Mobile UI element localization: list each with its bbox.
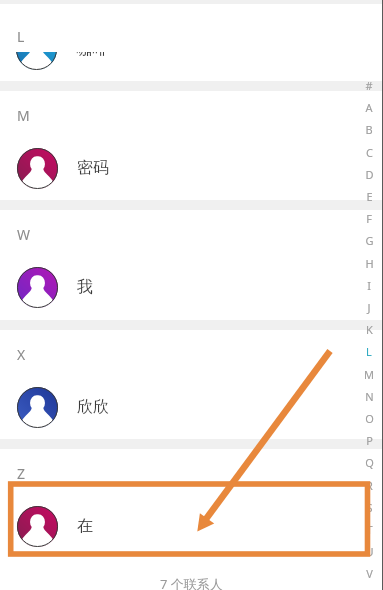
staticText: 欣欣 [77, 397, 109, 417]
staticText: L [17, 27, 25, 46]
staticText: O [365, 411, 374, 426]
staticText: G [365, 233, 374, 248]
staticText: T [366, 522, 373, 537]
staticText: M [17, 106, 30, 125]
staticText: U [365, 544, 374, 559]
staticText: X [17, 345, 26, 364]
button[interactable]: 欣欣 [0, 376, 383, 438]
staticText: W [17, 225, 31, 244]
staticText: 在 [77, 516, 93, 536]
staticText: P [366, 433, 373, 448]
button[interactable]: Alphabet index [360, 0, 378, 590]
staticText: A [365, 100, 373, 115]
staticText: L [366, 344, 372, 359]
staticText: R [366, 478, 373, 493]
staticText: E [366, 189, 373, 204]
button[interactable]: 密码 [0, 137, 383, 199]
staticText: 密码 [77, 158, 109, 178]
staticText: Q [365, 455, 374, 470]
staticText: 我 [77, 277, 93, 297]
staticText: K [366, 322, 373, 337]
staticText: # [365, 78, 373, 93]
staticText: D [365, 167, 374, 182]
staticText: 7 个联系人 [160, 575, 223, 590]
button[interactable]: 在 [0, 495, 383, 557]
staticText: F [366, 211, 372, 226]
staticText: C [366, 145, 373, 160]
staticText: V [366, 566, 373, 581]
staticText: Z [17, 464, 26, 483]
staticText: N [365, 389, 374, 404]
button[interactable]: 咖啡 [0, 18, 383, 80]
staticText: H [365, 256, 374, 271]
staticText: 咖啡 [76, 39, 108, 59]
staticText: I [367, 278, 371, 293]
button[interactable]: 我 [0, 256, 383, 318]
staticText: M [364, 367, 374, 382]
staticText: J [367, 300, 371, 315]
staticText: S [366, 500, 373, 515]
staticText: B [365, 122, 373, 137]
